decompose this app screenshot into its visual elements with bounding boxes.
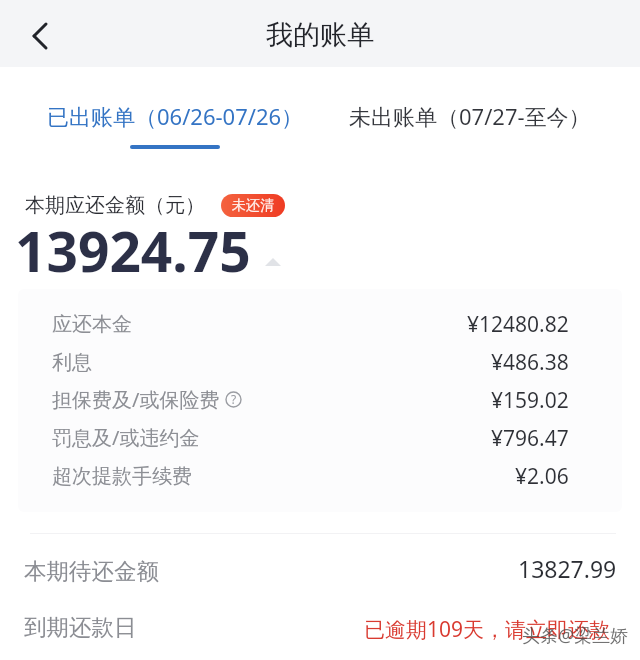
button[interactable]: 应还本金 <box>18 289 622 341</box>
button[interactable]: 超次提款手续费 <box>18 455 622 493</box>
staticText: 未出账单（07/27-至今） <box>349 101 591 131</box>
staticText: ¥2.06 <box>515 462 569 491</box>
button[interactable]: 利息 <box>18 341 622 379</box>
button[interactable]: 本期待还金额 <box>0 541 640 601</box>
staticText: 罚息及/或违约金 <box>52 424 200 451</box>
button[interactable]: 已出账单（06/26-07/26） <box>30 96 320 152</box>
staticText: 13924.75 <box>15 213 251 288</box>
button[interactable]: 到期还款日 <box>0 597 640 657</box>
staticText: 超次提款手续费 <box>52 464 192 489</box>
staticText: 未还清 <box>232 197 274 215</box>
staticText: ¥486.38 <box>491 348 569 377</box>
staticText: 我的账单 <box>266 18 374 52</box>
staticText: ¥12480.82 <box>467 310 569 339</box>
staticText: 本期待还金额 <box>24 557 159 585</box>
staticText: 担保费及/或保险费 <box>52 386 220 413</box>
staticText: 已逾期109天，请立即还款 <box>364 615 611 644</box>
staticText: 到期还款日 <box>24 613 137 641</box>
button[interactable]: 罚息及/或违约金 <box>18 417 622 455</box>
button[interactable]: Back <box>17 2 63 69</box>
staticText: 头条@梁兰娇 <box>522 623 629 648</box>
staticText: ? <box>231 391 237 407</box>
button[interactable]: 未出账单（07/27-至今） <box>320 96 620 152</box>
button[interactable]: 担保费及/或保险费 <box>18 379 622 417</box>
staticText: 13827.99 <box>518 553 617 584</box>
staticText: 本期应还金额（元） <box>25 193 205 218</box>
staticText: ¥796.47 <box>491 424 569 453</box>
staticText: ¥159.02 <box>491 386 569 415</box>
staticText: 利息 <box>52 350 92 375</box>
staticText: 应还本金 <box>52 312 132 337</box>
staticText: 已出账单（06/26-07/26） <box>47 101 304 131</box>
